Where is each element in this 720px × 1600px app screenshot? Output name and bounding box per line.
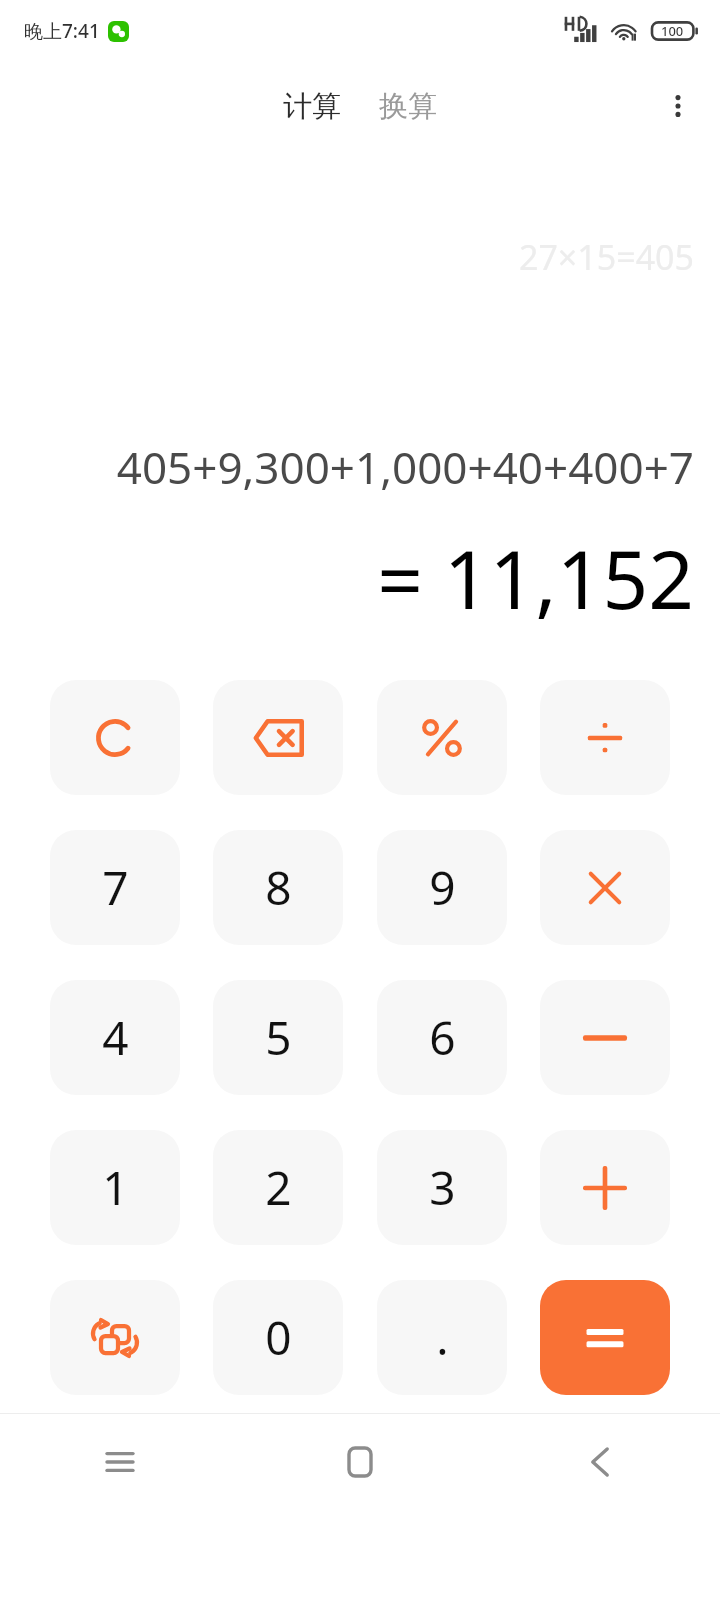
button[interactable]: Backspace	[213, 680, 343, 795]
button[interactable]: 2	[213, 1130, 343, 1245]
button[interactable]: Back	[480, 1414, 720, 1510]
staticText: 换算	[379, 88, 437, 125]
staticText: 2	[265, 1156, 292, 1219]
staticText: = 11,152	[26, 523, 694, 632]
button[interactable]: More options	[650, 78, 706, 134]
button[interactable]: Recents	[0, 1414, 240, 1510]
button[interactable]: 计算	[277, 84, 347, 129]
staticText: 4	[102, 1006, 129, 1069]
staticText: 3	[429, 1156, 456, 1219]
button[interactable]: 9	[377, 830, 507, 945]
staticText: 1	[102, 1156, 129, 1219]
staticText: 晚上7:41	[24, 18, 100, 44]
staticText: 405+9,300+1,000+40+400+7	[26, 437, 694, 497]
staticText: 9	[429, 856, 456, 919]
button[interactable]: 0	[213, 1280, 343, 1395]
button[interactable]: Home	[240, 1414, 480, 1510]
staticText: .	[436, 1306, 449, 1369]
button[interactable]: 1	[50, 1130, 180, 1245]
button[interactable]: 4	[50, 980, 180, 1095]
button[interactable]: Multiply	[540, 830, 670, 945]
button[interactable]: Convert	[50, 1280, 180, 1395]
staticText: 8	[265, 856, 292, 919]
button[interactable]: 7	[50, 830, 180, 945]
staticText: 27×15=405	[518, 234, 694, 280]
button[interactable]: 换算	[373, 84, 443, 129]
staticText: 0	[265, 1306, 292, 1369]
button[interactable]: Minus	[540, 980, 670, 1095]
button[interactable]: 6	[377, 980, 507, 1095]
button[interactable]: Clear	[50, 680, 180, 795]
staticText: 6	[429, 1006, 456, 1069]
button[interactable]: 8	[213, 830, 343, 945]
staticText: 计算	[283, 88, 341, 125]
button[interactable]: 3	[377, 1130, 507, 1245]
button[interactable]: 5	[213, 980, 343, 1095]
staticText: 7	[102, 856, 129, 919]
staticText: 100	[661, 22, 684, 40]
button[interactable]: Percent	[377, 680, 507, 795]
button[interactable]: Plus	[540, 1130, 670, 1245]
button[interactable]: Divide	[540, 680, 670, 795]
button[interactable]: .	[377, 1280, 507, 1395]
button[interactable]: Equals	[540, 1280, 670, 1395]
staticText: 5	[265, 1006, 292, 1069]
